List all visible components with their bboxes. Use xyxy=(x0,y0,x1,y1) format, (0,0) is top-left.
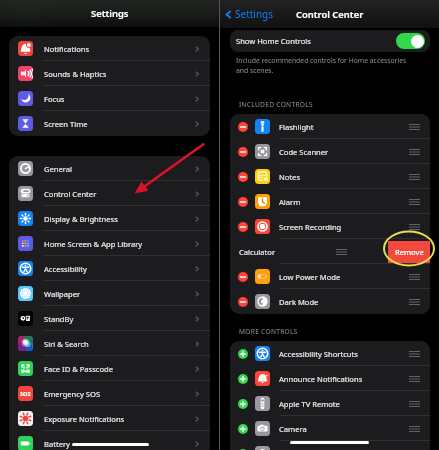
button[interactable]: Calculator xyxy=(230,239,430,264)
button[interactable]: Add control xyxy=(230,441,430,450)
button[interactable]: Remove control xyxy=(230,164,430,189)
staticText: Accessibility xyxy=(44,264,87,274)
staticText: Alarm xyxy=(279,197,301,207)
other: Reorder xyxy=(409,149,420,155)
staticText: Notifications xyxy=(44,44,90,54)
staticText: Accessibility Shortcuts xyxy=(279,349,358,359)
button[interactable]: StandBy xyxy=(9,306,210,331)
staticText: MORE CONTROLS xyxy=(239,327,298,336)
other: Reorder xyxy=(336,249,347,255)
button[interactable]: Focus xyxy=(9,86,210,111)
button[interactable]: Siri & Search xyxy=(9,331,210,356)
other: Reorder xyxy=(409,199,420,205)
staticText: Exposure Notifications xyxy=(44,414,125,424)
button[interactable]: Remove xyxy=(388,241,430,263)
staticText: Face ID & Passcode xyxy=(44,364,114,374)
button[interactable]: Remove control xyxy=(230,289,430,314)
staticText: Calculator xyxy=(239,247,276,257)
button[interactable]: Add control xyxy=(230,341,430,366)
staticText: Settings xyxy=(91,7,129,20)
button[interactable]: Remove control xyxy=(230,264,430,289)
other: Remove control xyxy=(238,197,248,207)
other: Add control xyxy=(238,349,248,359)
other: Remove control xyxy=(238,272,248,282)
staticText: INCLUDED CONTROLS xyxy=(239,100,313,109)
button[interactable]: Face ID & Passcode xyxy=(9,356,210,381)
button[interactable]: Add control xyxy=(230,416,430,441)
other: Reorder xyxy=(409,174,420,180)
staticText: General xyxy=(44,164,72,174)
other: Reorder xyxy=(409,426,420,432)
other: Remove control xyxy=(238,172,248,182)
other: Add control xyxy=(238,449,248,450)
button[interactable]: Show Home Controls xyxy=(230,30,430,52)
staticText: Remove xyxy=(395,247,424,257)
button[interactable]: Settings xyxy=(223,7,274,21)
button[interactable]: Remove control xyxy=(230,189,430,214)
other: Reorder xyxy=(409,401,420,407)
other: Reorder xyxy=(409,299,420,305)
staticText: Settings xyxy=(235,7,274,21)
other: Remove control xyxy=(238,297,248,307)
staticText: Screen Time xyxy=(44,119,88,129)
staticText: Control Center xyxy=(44,189,97,199)
staticText: Battery xyxy=(44,439,70,449)
staticText: Focus xyxy=(44,94,65,104)
button[interactable]: Screen Time xyxy=(9,111,210,136)
other: Reorder xyxy=(409,224,420,230)
button[interactable]: Exposure Notifications xyxy=(9,406,210,431)
other: Reorder xyxy=(409,351,420,357)
button[interactable]: Notifications xyxy=(9,36,210,61)
staticText: StandBy xyxy=(44,314,74,324)
other: Reorder xyxy=(409,124,420,130)
other: Add control xyxy=(238,399,248,409)
other: Add control xyxy=(238,374,248,384)
staticText: Low Power Mode xyxy=(279,272,341,282)
staticText: Apple TV Remote xyxy=(279,399,340,409)
button[interactable]: Accessibility xyxy=(9,256,210,281)
button[interactable]: Control Center xyxy=(9,181,210,206)
button[interactable]: Remove control xyxy=(230,214,430,239)
staticText: Dark Mode xyxy=(279,297,319,307)
staticText: Notes xyxy=(279,172,301,182)
other: Reorder xyxy=(409,376,420,382)
button[interactable]: Add control xyxy=(230,366,430,391)
staticText: Flashlight xyxy=(279,122,314,132)
staticText: Announce Notifications xyxy=(279,374,363,384)
staticText: Include recommended controls for Home ac… xyxy=(236,56,407,75)
other: Remove control xyxy=(238,122,248,132)
other: Remove control xyxy=(238,147,248,157)
other: Add control xyxy=(238,424,248,434)
button[interactable]: Display & Brightness xyxy=(9,206,210,231)
staticText: Code Scanner xyxy=(279,147,329,157)
button[interactable]: SOS xyxy=(9,381,210,406)
button[interactable]: Home Screen & App Library xyxy=(9,231,210,256)
staticText: Show Home Controls xyxy=(236,36,311,46)
staticText: Emergency SOS xyxy=(44,389,101,399)
button[interactable]: Battery xyxy=(9,431,210,450)
staticText: Control Center xyxy=(296,8,364,21)
staticText: SOS xyxy=(20,390,31,397)
staticText: Wallpaper xyxy=(44,289,81,299)
staticText: Display & Brightness xyxy=(44,214,118,224)
button[interactable]: Remove control xyxy=(230,114,430,139)
staticText: Home Screen & App Library xyxy=(44,239,143,249)
other: Reorder xyxy=(409,274,420,280)
button[interactable]: Remove control xyxy=(230,139,430,164)
staticText: Screen Recording xyxy=(279,222,342,232)
button[interactable]: Sounds & Haptics xyxy=(9,61,210,86)
button[interactable]: General xyxy=(9,156,210,181)
button[interactable]: Wallpaper xyxy=(9,281,210,306)
button[interactable]: Add control xyxy=(230,391,430,416)
staticText: Camera xyxy=(279,424,307,434)
staticText: Siri & Search xyxy=(44,339,89,349)
other: Remove control xyxy=(238,222,248,232)
staticText: Sounds & Haptics xyxy=(44,69,107,79)
